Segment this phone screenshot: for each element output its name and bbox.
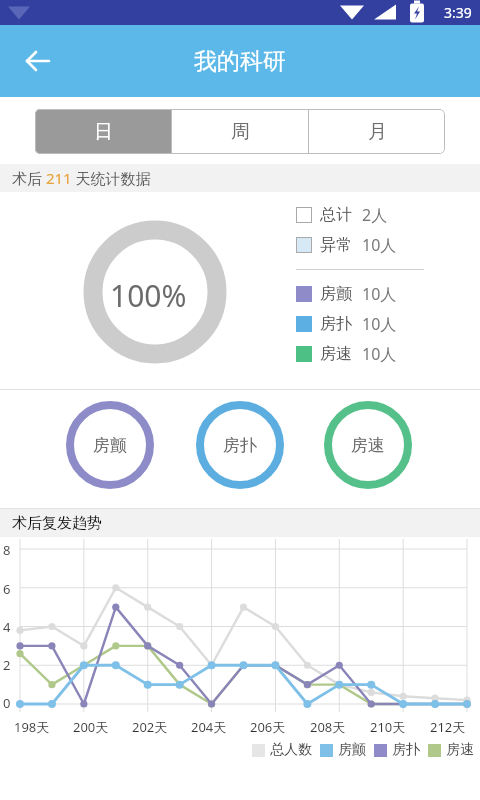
staticText: 200天: [73, 718, 109, 736]
button[interactable]: 房颤: [296, 279, 397, 309]
button[interactable]: 周: [172, 109, 308, 154]
staticText: 2: [3, 656, 11, 674]
button[interactable]: 总计: [296, 200, 388, 230]
staticText: 房扑: [320, 314, 352, 334]
staticText: 异常: [320, 235, 352, 255]
staticText: 3:39: [444, 3, 472, 22]
button[interactable]: 日: [35, 109, 171, 154]
button[interactable]: 房扑: [374, 741, 420, 759]
button[interactable]: Back: [14, 37, 62, 85]
staticText: 月: [368, 120, 387, 144]
staticText: 204天: [191, 718, 227, 736]
staticText: 6: [3, 580, 11, 598]
staticText: 10人: [362, 313, 397, 335]
button[interactable]: 房颤: [320, 741, 366, 759]
staticText: 总计: [320, 205, 352, 225]
button[interactable]: 房扑: [196, 401, 284, 489]
staticText: 208天: [310, 718, 346, 736]
staticText: 202天: [132, 718, 168, 736]
staticText: 2人: [362, 204, 388, 226]
staticText: 210天: [370, 718, 406, 736]
staticText: 房速: [351, 435, 385, 456]
button[interactable]: 总人数: [252, 741, 312, 759]
button[interactable]: 房扑: [296, 309, 397, 339]
staticText: 总人数: [270, 741, 312, 759]
staticText: 房颤: [320, 284, 352, 304]
staticText: 术后复发趋势: [12, 514, 102, 533]
staticText: 术后 211 天统计数据: [12, 168, 151, 188]
staticText: 8: [3, 541, 11, 559]
staticText: 日: [94, 120, 113, 144]
button[interactable]: 月: [309, 109, 445, 154]
staticText: 房速: [446, 741, 474, 759]
staticText: 10人: [362, 283, 397, 305]
button[interactable]: 异常: [296, 230, 397, 260]
staticText: 房扑: [392, 741, 420, 759]
staticText: 房扑: [223, 435, 257, 456]
staticText: 房颤: [338, 741, 366, 759]
staticText: 我的科研: [194, 47, 286, 76]
staticText: 198天: [14, 718, 50, 736]
staticText: 周: [231, 120, 250, 144]
staticText: 212天: [430, 718, 466, 736]
staticText: 房颤: [93, 435, 127, 456]
staticText: 4: [3, 618, 11, 636]
staticText: 10人: [362, 343, 397, 365]
button[interactable]: 房速: [428, 741, 474, 759]
button[interactable]: 房速: [324, 401, 412, 489]
staticText: 0: [3, 694, 11, 712]
staticText: 房速: [320, 344, 352, 364]
button[interactable]: 房速: [296, 339, 397, 369]
button[interactable]: 房颤: [66, 401, 154, 489]
staticText: 206天: [250, 718, 286, 736]
staticText: 100%: [110, 275, 187, 316]
staticText: 10人: [362, 234, 397, 256]
